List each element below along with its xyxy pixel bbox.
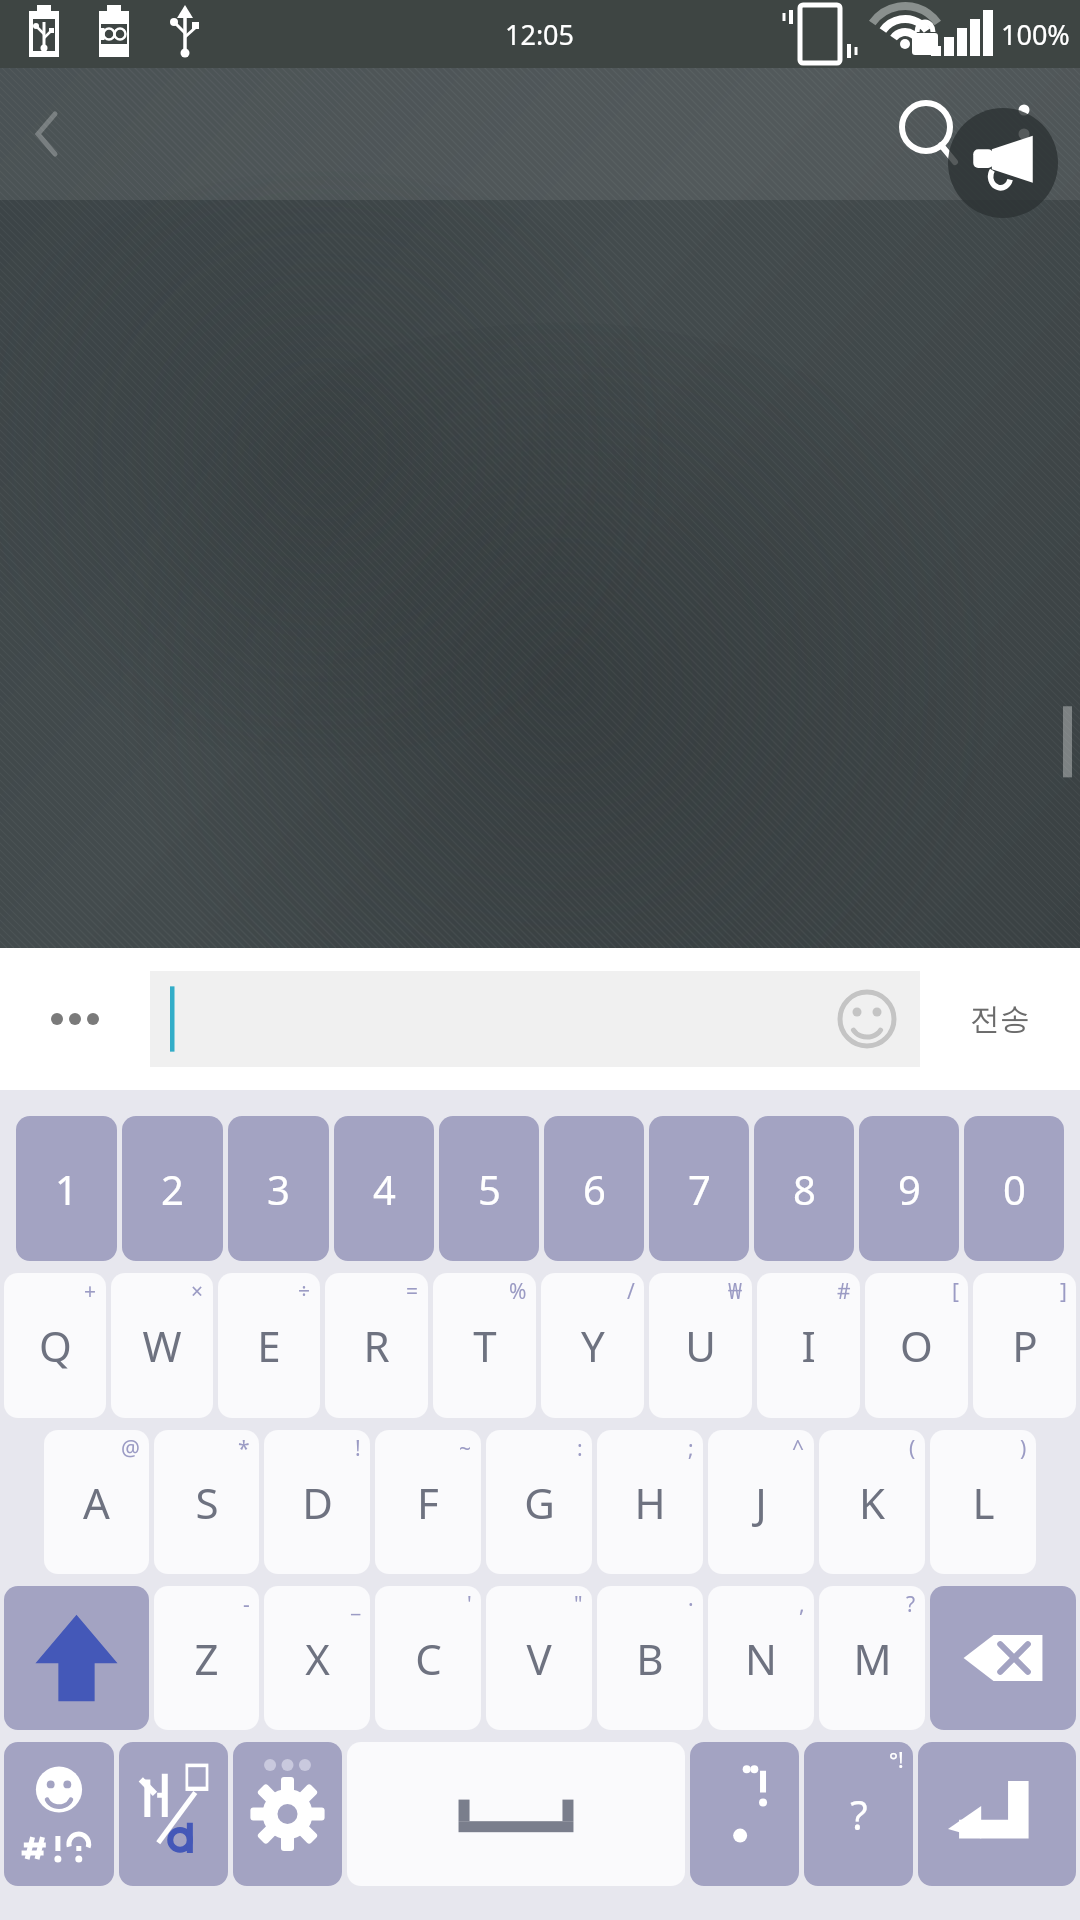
staticText: Y [581,1317,605,1374]
button[interactable]: M [819,1586,925,1730]
button[interactable]: A [44,1430,149,1574]
button[interactable]: Period [690,1742,799,1886]
button[interactable]: X [264,1586,370,1730]
staticText: = [406,1277,419,1306]
button[interactable]: G [486,1430,592,1574]
button[interactable]: W [111,1273,213,1418]
button[interactable]: B [597,1586,703,1730]
button[interactable]: Change language [119,1742,228,1886]
button[interactable]: U [649,1273,752,1418]
staticText: 1 [55,1162,78,1216]
staticText: 4 [373,1162,396,1216]
button[interactable]: Keyboard settings [233,1742,342,1886]
staticText: L [972,1474,995,1531]
button[interactable]: O [865,1273,968,1418]
staticText: / [627,1277,635,1306]
button[interactable]: Backspace [930,1586,1076,1730]
button[interactable]: 전송 [920,948,1080,1090]
staticText: ₩ [728,1277,743,1306]
staticText: + [84,1277,97,1306]
button[interactable]: 5 [439,1116,539,1261]
staticText: 6 [583,1162,606,1216]
staticText: _ [351,1590,361,1619]
button[interactable]: 9 [859,1116,959,1261]
button[interactable]: Enter [918,1742,1076,1886]
button[interactable]: ? [804,1742,913,1886]
button[interactable]: N [708,1586,814,1730]
button[interactable]: Emoji [836,988,898,1050]
staticText: , [799,1590,805,1619]
button[interactable]: D [264,1430,370,1574]
button[interactable]: Emoji and symbols [4,1742,114,1886]
staticText: ) [1020,1434,1027,1463]
button[interactable]: More options [986,96,1062,172]
staticText: W [142,1317,182,1374]
button[interactable]: I [757,1273,860,1418]
button[interactable]: E [218,1273,320,1418]
staticText: ? [906,1590,916,1619]
button[interactable]: 2 [122,1116,223,1261]
button[interactable]: Space [347,1742,685,1886]
staticText: I [801,1317,816,1374]
button[interactable]: More [0,948,150,1090]
button[interactable]: K [819,1430,925,1574]
staticText: " [574,1590,583,1619]
button[interactable]: 3 [228,1116,329,1261]
staticText: 9 [898,1162,921,1216]
staticText: E [257,1317,281,1374]
staticText: · [688,1590,694,1619]
staticText: * [238,1434,250,1463]
staticText: # [837,1277,851,1306]
button[interactable]: F [375,1430,481,1574]
button[interactable]: L [930,1430,1036,1574]
button[interactable]: Emoji [150,971,920,1067]
staticText: ; [688,1434,694,1463]
staticText: 2 [161,1162,184,1216]
staticText: 7 [688,1162,711,1216]
staticText: F [417,1474,439,1531]
button[interactable]: 7 [649,1116,749,1261]
staticText: K [859,1474,885,1531]
staticText: B [636,1630,664,1687]
staticText: ÷ [298,1277,311,1306]
button[interactable]: H [597,1430,703,1574]
staticText: : [577,1434,583,1463]
staticText: A [83,1474,110,1531]
staticText: V [526,1630,552,1687]
staticText: × [191,1277,204,1306]
staticText: M [853,1630,892,1687]
staticText: @ [121,1434,140,1463]
button[interactable]: S [154,1430,259,1574]
staticText: P [1012,1317,1038,1374]
button[interactable]: J [708,1430,814,1574]
button[interactable]: V [486,1586,592,1730]
button[interactable]: Z [154,1586,259,1730]
button[interactable]: Shift [4,1586,149,1730]
staticText: D [302,1474,333,1531]
button[interactable]: 0 [964,1116,1064,1261]
staticText: - [243,1590,250,1619]
button[interactable]: T [433,1273,536,1418]
staticText: ! [355,1434,361,1463]
button[interactable]: Announcement [948,108,1058,218]
staticText: 12:05 [505,16,575,53]
staticText: C [415,1630,442,1687]
button[interactable]: 4 [334,1116,434,1261]
button[interactable]: C [375,1586,481,1730]
button[interactable]: 6 [544,1116,644,1261]
staticText: ] [1060,1277,1067,1306]
staticText: ? [850,1787,868,1841]
button[interactable]: Search [886,91,972,177]
button[interactable]: Back [6,94,86,174]
staticText: J [755,1474,767,1531]
button[interactable]: 1 [16,1116,117,1261]
staticText: H [634,1474,666,1531]
button[interactable]: 8 [754,1116,854,1261]
staticText: % [509,1277,527,1306]
staticText: T [473,1317,497,1374]
button[interactable]: Y [541,1273,644,1418]
button[interactable]: Q [4,1273,106,1418]
staticText: G [524,1474,555,1531]
button[interactable]: R [325,1273,428,1418]
button[interactable]: P [973,1273,1076,1418]
